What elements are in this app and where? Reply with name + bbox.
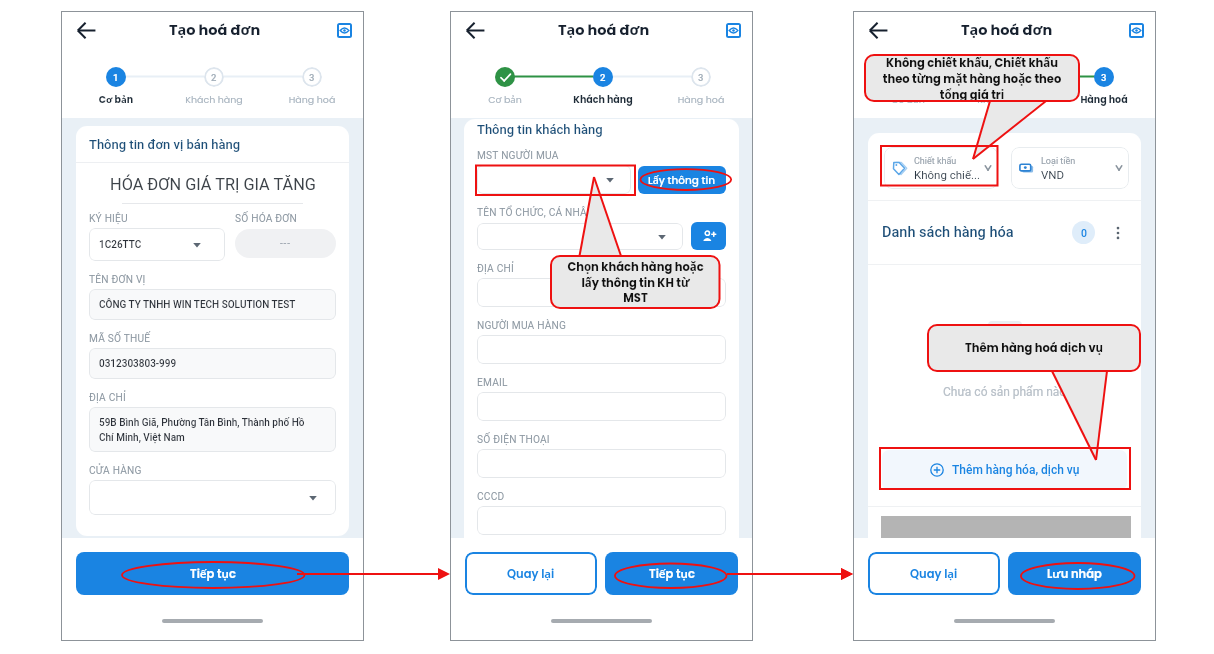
staticText: 3 xyxy=(1101,72,1107,83)
staticText: Lưu nháp xyxy=(1047,566,1102,582)
staticText: Cơ bản xyxy=(462,93,548,106)
button[interactable]: 3 xyxy=(658,67,744,106)
staticText: 0 xyxy=(1081,227,1087,239)
staticText: VND xyxy=(1041,168,1065,181)
staticText: 0312303803-999 xyxy=(99,358,177,370)
staticText: 59B Bình Giã, Phường Tân Bình, Thành phố… xyxy=(99,417,305,443)
staticText: HÓA ĐƠN GIÁ TRỊ GIA TĂNG xyxy=(110,175,316,194)
button[interactable]: Quay lại xyxy=(463,18,487,42)
button[interactable] xyxy=(477,392,726,421)
button[interactable]: Xem trước xyxy=(1124,18,1148,42)
button[interactable]: Lấy thông tin xyxy=(638,166,726,194)
staticText: 2 xyxy=(600,72,606,83)
staticText: 3 xyxy=(698,72,704,83)
staticText: Cơ bản xyxy=(73,93,159,106)
button[interactable]: --- xyxy=(235,229,336,258)
staticText: 3 xyxy=(309,72,315,83)
button[interactable]: CÔNG TY TNHH WIN TECH SOLUTION TEST xyxy=(89,289,336,320)
button[interactable]: 59B Bình Giã, Phường Tân Bình, Thành phố… xyxy=(89,407,336,452)
button[interactable]: 3 xyxy=(269,67,355,106)
button[interactable]: Tùy chọn xyxy=(1109,224,1127,242)
staticText: Tạo hoá đơn xyxy=(558,19,650,40)
staticText: 1 xyxy=(113,72,119,83)
staticText: SỐ ĐIỆN THOẠI xyxy=(477,434,550,446)
staticText: Thêm hàng hóa, dịch vụ xyxy=(952,463,1080,477)
button[interactable]: Thêm hàng hóa, dịch vụ xyxy=(882,450,1127,490)
staticText: 1C26TTC xyxy=(99,239,142,251)
staticText: Khách hàng xyxy=(171,93,257,106)
staticText: CỬA HÀNG xyxy=(89,465,142,477)
button[interactable]: Thêm khách hàng xyxy=(691,222,726,250)
staticText: Chiết khấu xyxy=(914,156,957,167)
staticText: Khách hàng xyxy=(560,93,646,106)
staticText: Tạo hoá đơn xyxy=(169,19,261,40)
staticText: Chọn khách hàng hoặc lấy thông tin KH từ… xyxy=(557,259,714,306)
button[interactable]: Tiếp tục xyxy=(76,552,349,595)
staticText: Không chiế... xyxy=(914,168,981,181)
staticText: Cơ bản xyxy=(865,93,951,106)
staticText: TÊN ĐƠN VỊ xyxy=(89,274,146,286)
button[interactable]: Cơ bản xyxy=(865,67,951,106)
staticText: Tiếp tục xyxy=(649,566,695,582)
staticText: Thông tin khách hàng xyxy=(477,122,603,137)
button[interactable]: Tiếp tục xyxy=(605,552,738,595)
staticText: Tạo hoá đơn xyxy=(961,19,1053,40)
staticText: Thông tin đơn vị bán hàng xyxy=(89,137,241,152)
button[interactable]: 2 xyxy=(560,67,646,106)
staticText: KÝ HIỆU xyxy=(89,213,128,225)
button[interactable]: Loại tiền xyxy=(1011,147,1129,189)
button[interactable]: Quay lại xyxy=(868,552,1000,595)
button[interactable]: Cơ bản xyxy=(462,67,548,106)
button[interactable]: Khách hàng xyxy=(963,67,1049,106)
staticText: Hàng hoá xyxy=(658,93,744,106)
button[interactable]: Xem trước xyxy=(721,18,745,42)
staticText: Thêm hàng hoá dịch vụ xyxy=(934,340,1134,356)
button[interactable]: 2 xyxy=(171,67,257,106)
staticText: Chưa có sản phẩm nào xyxy=(943,385,1067,399)
button[interactable] xyxy=(477,165,631,194)
button[interactable]: Xem trước xyxy=(332,18,356,42)
staticText: MÃ SỐ THUẾ xyxy=(89,333,151,345)
staticText: Quay lại xyxy=(910,566,958,582)
button[interactable] xyxy=(477,506,726,535)
staticText: Khách hàng xyxy=(963,93,1049,106)
staticText: ĐỊA CHỈ xyxy=(477,263,514,275)
button[interactable] xyxy=(477,335,726,364)
staticText: CÔNG TY TNHH WIN TECH SOLUTION TEST xyxy=(99,299,296,311)
button[interactable]: Lưu nháp xyxy=(1008,552,1141,595)
staticText: TÊN TỔ CHỨC, CÁ NHÂN xyxy=(477,207,595,219)
staticText: Danh sách hàng hóa xyxy=(882,224,1014,241)
staticText: MST NGƯỜI MUA xyxy=(477,150,559,162)
button[interactable]: Quay lại xyxy=(465,552,597,595)
button[interactable]: 1 xyxy=(73,67,159,106)
button[interactable] xyxy=(89,480,336,515)
button[interactable]: Quay lại xyxy=(74,18,98,42)
button[interactable] xyxy=(477,223,683,250)
staticText: EMAIL xyxy=(477,377,508,389)
staticText: Hàng hoá xyxy=(269,93,355,106)
staticText: Hàng hoá xyxy=(1061,93,1147,106)
staticText: NGƯỜI MUA HÀNG xyxy=(477,320,567,332)
staticText: Tiếp tục xyxy=(190,566,236,582)
button[interactable]: 1C26TTC xyxy=(89,228,225,261)
staticText: Quay lại xyxy=(507,566,555,582)
button[interactable]: Quay lại xyxy=(866,18,890,42)
button[interactable]: 0312303803-999 xyxy=(89,348,336,379)
staticText: Không chiết khấu, Chiết khấu theo từng m… xyxy=(871,55,1073,101)
button[interactable] xyxy=(477,449,726,478)
staticText: CCCD xyxy=(477,491,505,503)
staticText: SỐ HÓA ĐƠN xyxy=(235,213,298,225)
staticText: Loại tiền xyxy=(1041,156,1076,167)
staticText: 2 xyxy=(211,72,217,83)
staticText: --- xyxy=(280,238,291,250)
button[interactable]: 3 xyxy=(1061,67,1147,106)
staticText: Lấy thông tin xyxy=(648,173,716,188)
staticText: ĐỊA CHỈ xyxy=(89,392,126,404)
button[interactable]: Chiết khấu xyxy=(884,147,998,189)
button[interactable] xyxy=(477,278,726,307)
